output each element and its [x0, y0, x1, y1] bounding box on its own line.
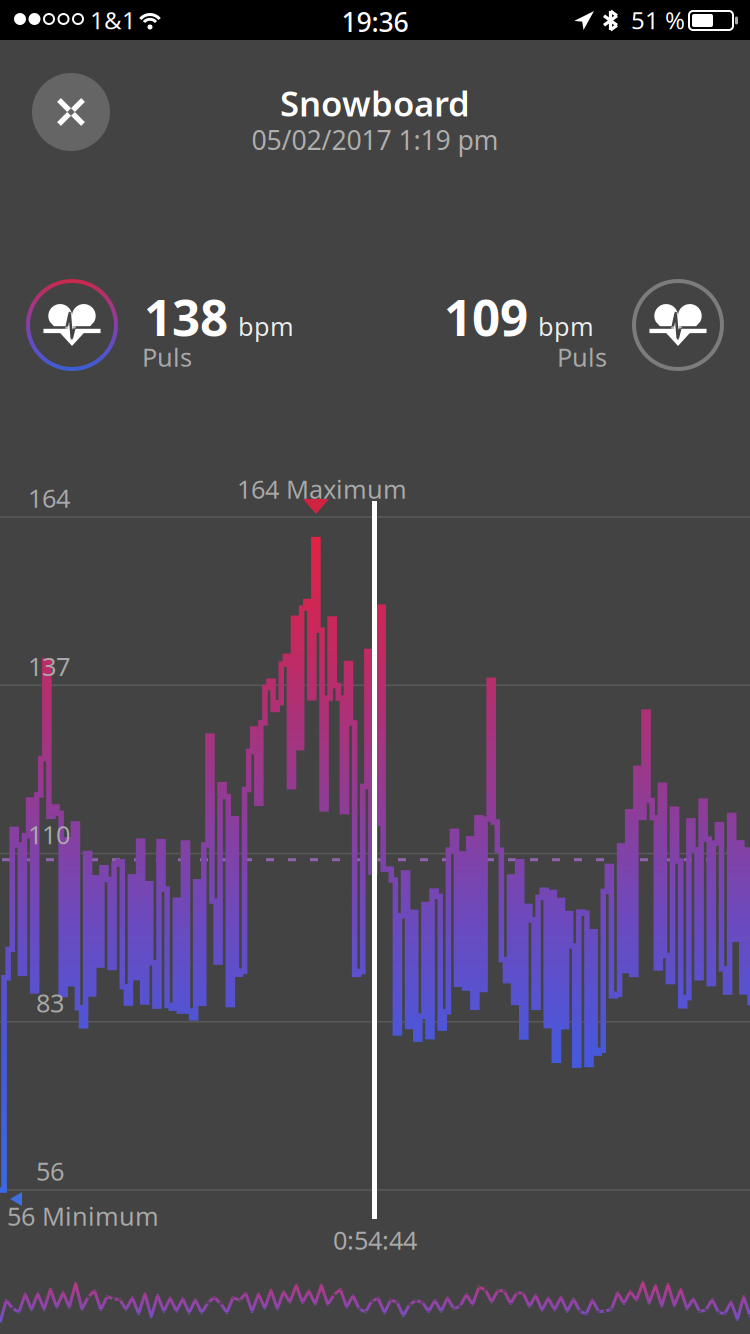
staticText: 51 % [631, 4, 685, 36]
staticText: 83 [36, 986, 64, 1019]
staticText: 0:54:44 [333, 1223, 417, 1257]
staticText: Snowboard [280, 80, 470, 126]
staticText: 164 [28, 481, 70, 515]
staticText: 109 [444, 284, 528, 349]
staticText: Puls [142, 340, 192, 374]
staticText: 56 Minimum [7, 1199, 159, 1233]
staticText: 1&1 [90, 4, 136, 36]
staticText: 110 [28, 817, 70, 851]
staticText: bpm [538, 309, 594, 343]
staticText: 164 Maximum [237, 472, 407, 506]
button[interactable]: Close [32, 73, 110, 151]
staticText: 19:36 [341, 4, 408, 39]
staticText: Puls [557, 340, 607, 374]
staticText: 56 [36, 1154, 64, 1188]
staticText: bpm [238, 309, 294, 343]
staticText: 137 [28, 649, 70, 683]
staticText: 05/02/2017 1:19 pm [251, 122, 498, 157]
staticText: 138 [144, 284, 228, 349]
